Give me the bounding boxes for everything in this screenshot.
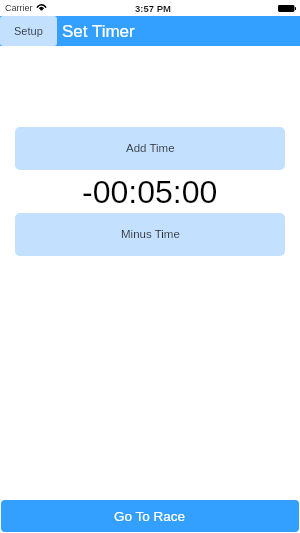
button[interactable]: Setup — [0, 16, 57, 46]
button[interactable]: Add Time — [15, 127, 285, 170]
staticText: Setup — [14, 25, 43, 37]
button[interactable]: Minus Time — [15, 213, 285, 256]
staticText: -00:05:00 — [82, 174, 218, 210]
staticText: Add Time — [126, 142, 175, 155]
staticText: Set Timer — [62, 22, 135, 41]
button[interactable]: Go To Race — [1, 500, 299, 532]
staticText: Carrier — [5, 3, 33, 13]
staticText: Go To Race — [114, 509, 186, 524]
staticText: 3:57 PM — [135, 3, 171, 14]
staticText: Minus Time — [121, 228, 180, 241]
